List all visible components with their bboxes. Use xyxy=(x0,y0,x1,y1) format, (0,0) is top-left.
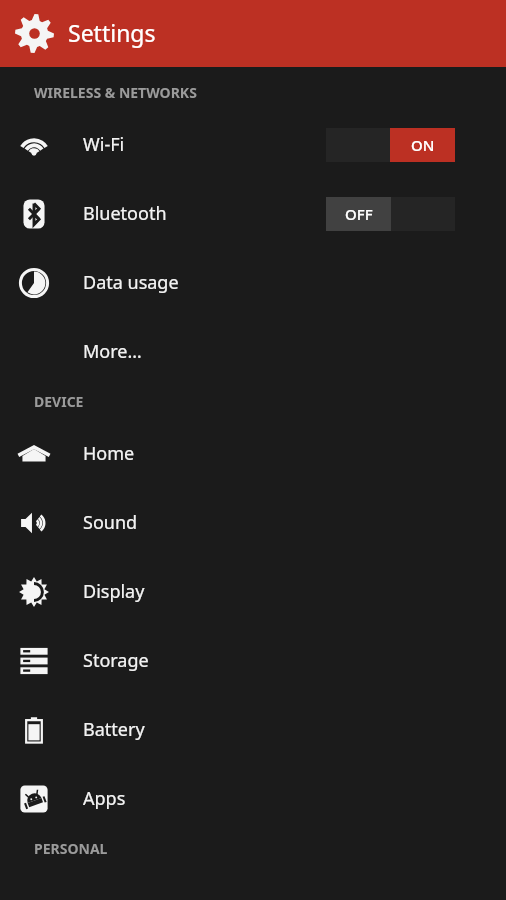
staticText: Display xyxy=(83,579,145,604)
staticText: Home xyxy=(83,441,135,466)
button[interactable]: Apps xyxy=(0,764,506,833)
staticText: Battery xyxy=(83,717,145,742)
staticText: Sound xyxy=(83,510,138,535)
staticText: More… xyxy=(83,339,142,364)
button[interactable]: Display xyxy=(0,557,506,626)
button[interactable]: Wi-Fi xyxy=(0,110,506,179)
staticText: PERSONAL xyxy=(34,839,108,858)
button[interactable]: Battery xyxy=(0,695,506,764)
staticText: Wi-Fi xyxy=(83,132,125,157)
button[interactable]: Sound xyxy=(0,488,506,557)
button[interactable]: More… xyxy=(0,317,506,386)
button[interactable]: Toggle on xyxy=(326,128,455,162)
staticText: DEVICE xyxy=(34,392,84,411)
button[interactable]: Settings xyxy=(0,0,506,67)
staticText: Data usage xyxy=(83,270,179,295)
staticText: ON xyxy=(411,135,435,155)
button[interactable]: Toggle off xyxy=(326,197,455,231)
staticText: OFF xyxy=(345,204,373,224)
staticText: WIRELESS & NETWORKS xyxy=(34,83,197,102)
button[interactable]: Data usage xyxy=(0,248,506,317)
button[interactable]: Home xyxy=(0,419,506,488)
staticText: Bluetooth xyxy=(83,201,167,226)
staticText: Settings xyxy=(68,17,156,48)
button[interactable]: Storage xyxy=(0,626,506,695)
staticText: Apps xyxy=(83,786,126,811)
staticText: Storage xyxy=(83,648,149,673)
button[interactable]: Bluetooth xyxy=(0,179,506,248)
